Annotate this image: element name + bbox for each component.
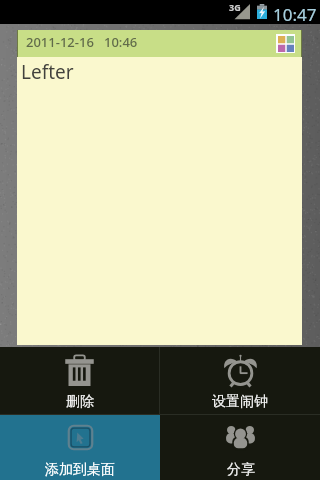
- staticText: 添加到桌面: [45, 461, 115, 479]
- staticText: 2011-12-16 10:46: [26, 33, 138, 51]
- button[interactable]: 设置闹钟: [160, 347, 320, 414]
- button[interactable]: Change note colour: [276, 34, 295, 53]
- staticText: 删除: [66, 393, 94, 411]
- staticText: 分享: [227, 461, 255, 479]
- button[interactable]: 分享: [160, 415, 320, 480]
- staticText: Lefter: [21, 59, 74, 85]
- button[interactable]: 删除: [0, 347, 159, 414]
- staticText: 10:47: [273, 3, 317, 26]
- staticText: 3G: [229, 1, 241, 13]
- staticText: 设置闹钟: [212, 393, 268, 411]
- button[interactable]: 添加到桌面: [0, 415, 160, 480]
